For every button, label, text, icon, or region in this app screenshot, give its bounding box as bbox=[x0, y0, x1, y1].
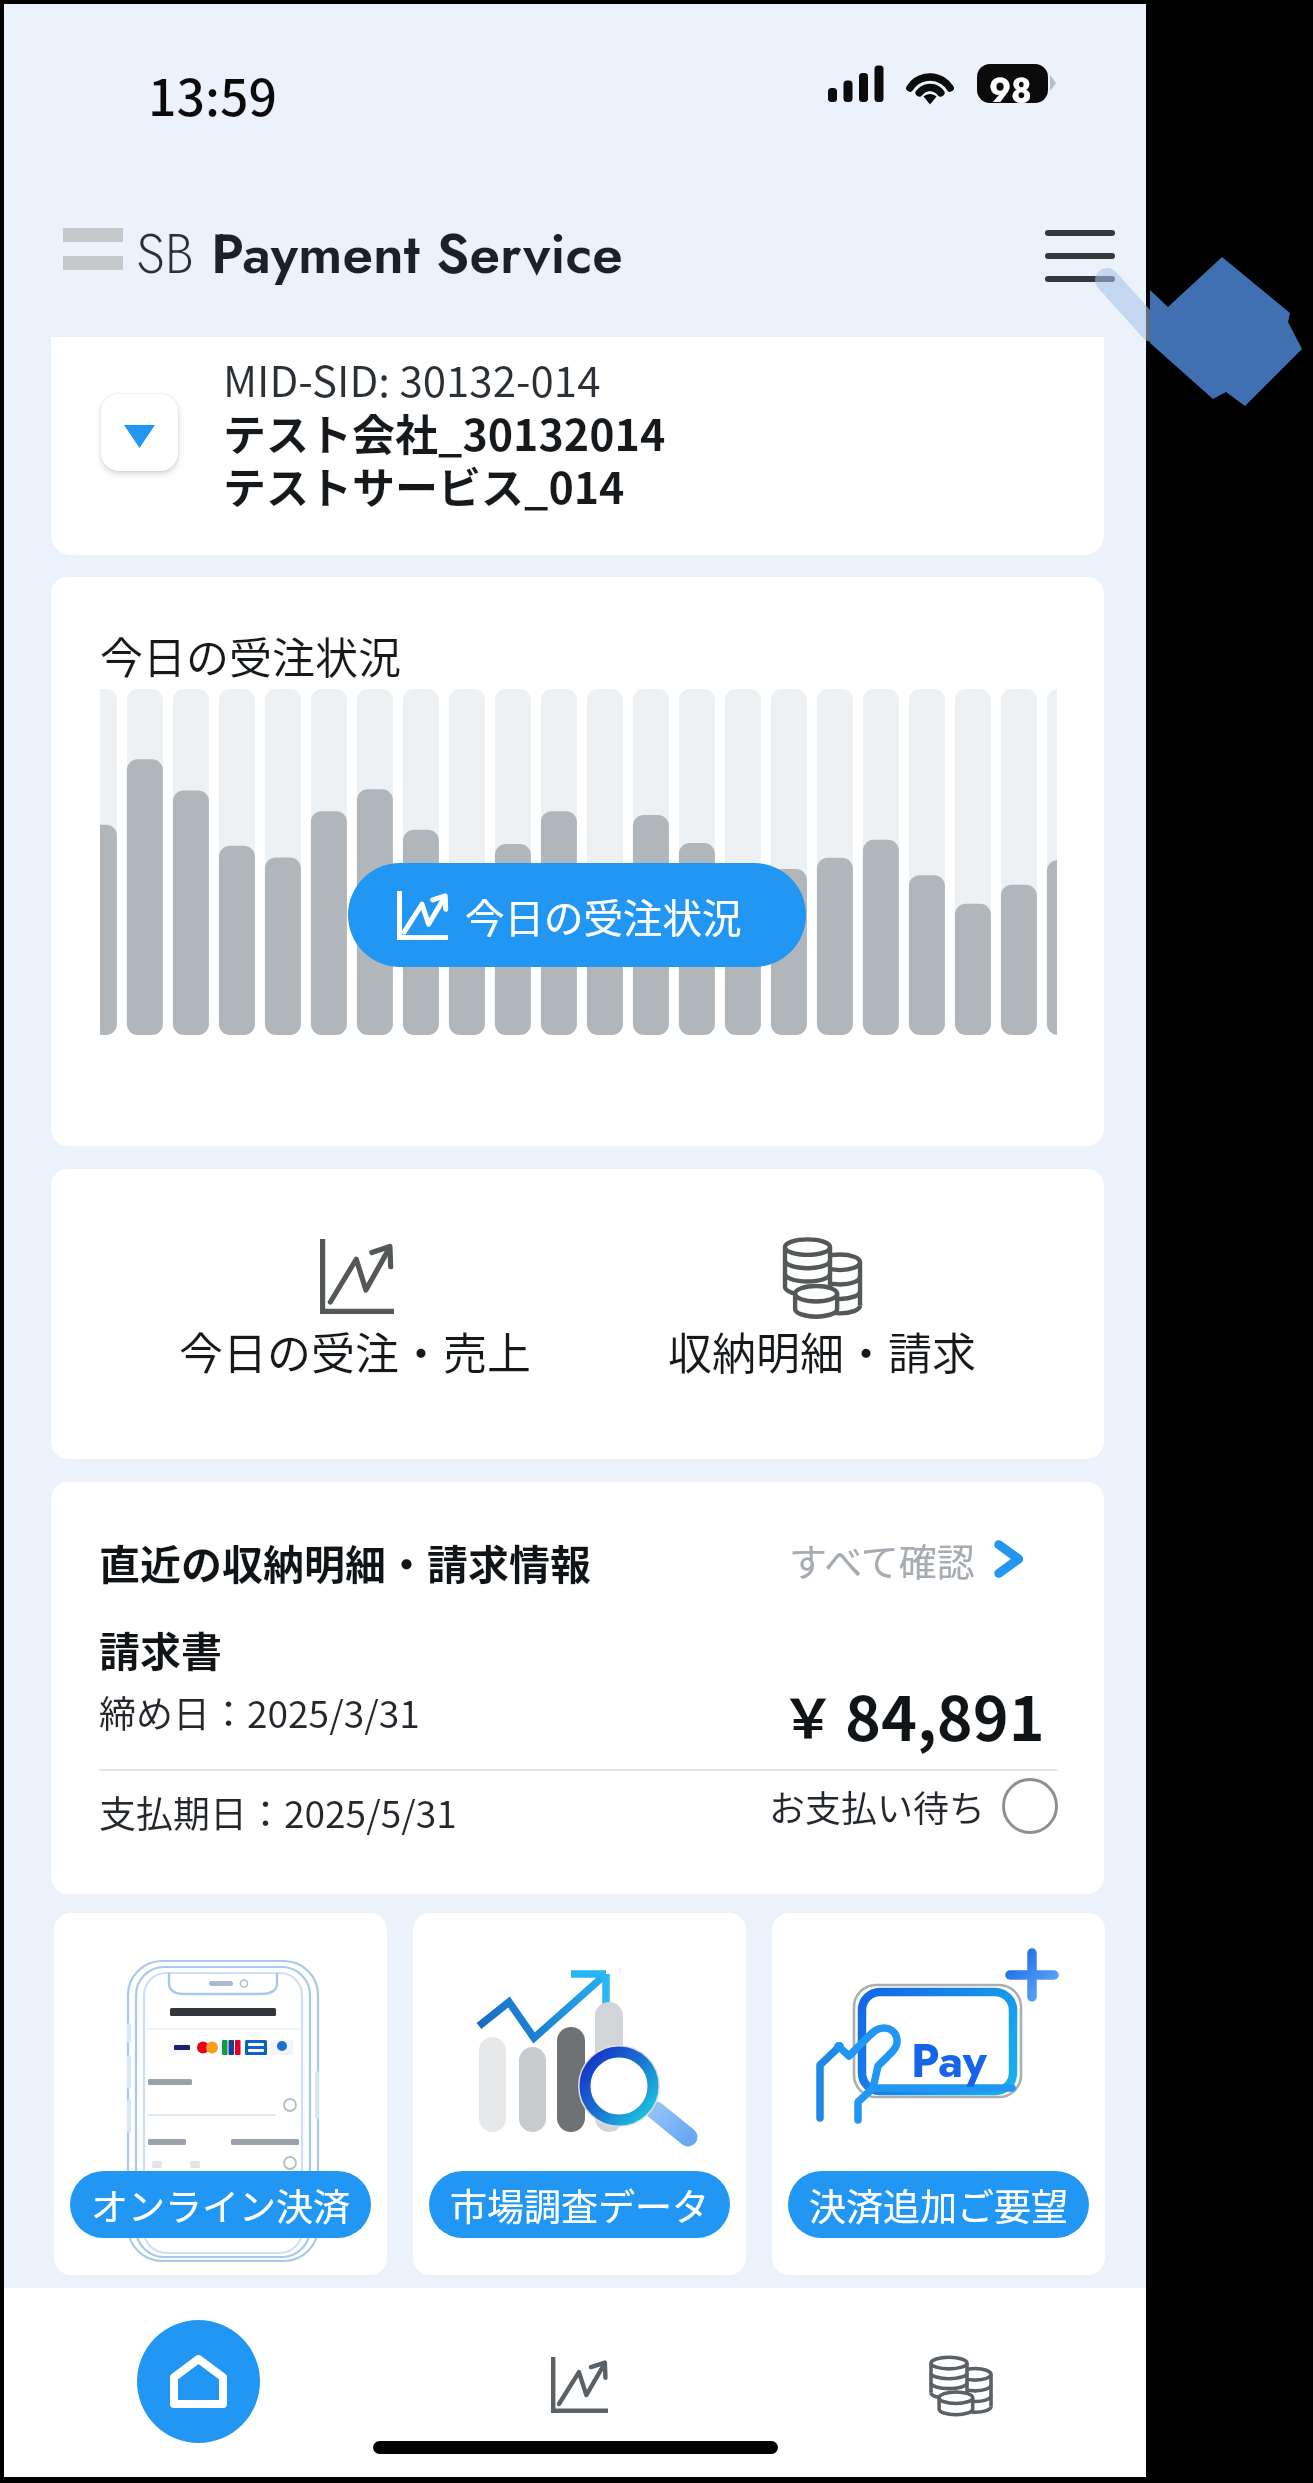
staticText: テストサービス_014 bbox=[223, 454, 625, 516]
staticText: 98 bbox=[989, 67, 1032, 115]
staticText: 請求書 bbox=[99, 1619, 222, 1678]
button[interactable]: オンライン決済 bbox=[54, 1913, 387, 2275]
staticText: MID-SID: 30132-014 bbox=[223, 348, 601, 409]
staticText: ￥ bbox=[781, 1676, 835, 1754]
button[interactable]: 収納明細・請求 bbox=[582, 1169, 1062, 1459]
staticText: 市場調査データ bbox=[450, 2178, 709, 2232]
staticText: Payment Service bbox=[211, 214, 623, 293]
staticText: Pay bbox=[911, 2028, 987, 2094]
staticText: 決済追加ご要望 bbox=[809, 2178, 1068, 2232]
button[interactable]: 今日の受注・売上 bbox=[115, 1169, 595, 1459]
button[interactable]: MID-SID: 30132-014 bbox=[51, 337, 1104, 555]
button[interactable]: 今日の受注状況 bbox=[348, 863, 806, 967]
button[interactable]: Home bbox=[137, 2320, 260, 2443]
button[interactable]: すべて確認 bbox=[789, 1530, 1025, 1588]
staticText: 直近の収納明細・請求情報 bbox=[99, 1532, 591, 1591]
button[interactable]: Pay bbox=[772, 1913, 1105, 2275]
button[interactable]: 市場調査データ bbox=[413, 1913, 746, 2275]
staticText: SB bbox=[136, 214, 211, 293]
staticText: 収納明細・請求 bbox=[668, 1319, 976, 1383]
staticText: 締め日：2025/3/31 bbox=[99, 1685, 420, 1739]
staticText: テスト会社_30132014 bbox=[223, 401, 666, 463]
staticText: 今日の受注状況 bbox=[100, 624, 401, 686]
button[interactable]: Sales bbox=[531, 2336, 628, 2433]
staticText: 今日の受注状況 bbox=[465, 887, 742, 944]
staticText: 支払期日：2025/5/31 bbox=[99, 1785, 457, 1839]
staticText: 13:59 bbox=[148, 58, 277, 130]
button[interactable]: Billing bbox=[912, 2336, 1009, 2433]
staticText: オンライン決済 bbox=[91, 2178, 350, 2232]
staticText: お支払い待ち bbox=[769, 1780, 986, 1832]
button[interactable]: Menu bbox=[1033, 211, 1127, 295]
staticText: すべて確認 bbox=[789, 1532, 975, 1587]
staticText: 84,891 bbox=[845, 1670, 1045, 1758]
staticText: 今日の受注・売上 bbox=[179, 1319, 531, 1383]
